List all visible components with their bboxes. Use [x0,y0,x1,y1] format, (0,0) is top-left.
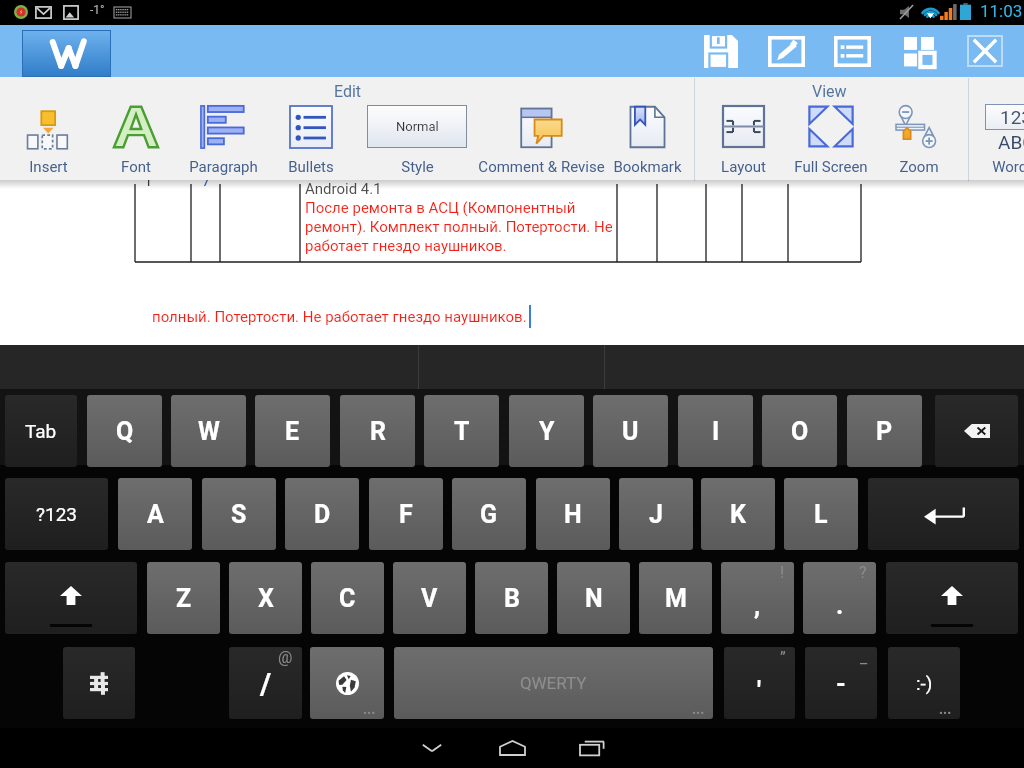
button[interactable]: L [784,478,858,550]
button[interactable]: G [452,478,526,550]
button[interactable]: Z [147,562,220,634]
staticText: ? [859,563,867,582]
button[interactable]: - [805,647,877,719]
button[interactable]: Outline [829,25,875,77]
button[interactable]: shift [886,562,1018,634]
staticText: 11:03 [980,1,1023,21]
button[interactable]: settings [63,647,135,719]
staticText: E [285,417,300,446]
staticText: - [836,669,846,698]
button[interactable]: F [369,478,443,550]
button[interactable]: Close [962,25,1008,77]
staticText: QWERTY [520,673,587,693]
staticText: Q [116,417,134,446]
staticText: C [339,584,356,613]
staticText: I [712,417,720,446]
button[interactable]: / [229,647,302,719]
button[interactable]: I [678,395,753,467]
staticText: . [836,591,844,620]
staticText: G [480,500,498,529]
staticText: Word C [992,158,1024,176]
button[interactable]: Bookmark [567,77,727,180]
staticText: ! [780,563,785,582]
button[interactable]: Normal [337,77,497,180]
button[interactable]: W [171,395,246,467]
button[interactable]: O [762,395,837,467]
button[interactable]: Y [509,395,584,467]
button[interactable]: Tab [5,395,77,467]
button[interactable]: V [393,562,466,634]
button[interactable]: . [803,562,876,634]
staticText: U [622,417,639,446]
button[interactable]: QWERTY [394,647,713,719]
button[interactable]: Insert [0,77,128,180]
staticText: R [370,417,386,446]
button[interactable]: U [593,395,668,467]
button[interactable]: T [424,395,499,467]
staticText: V [421,584,438,613]
staticText: Tab [25,420,57,442]
button[interactable]: X [229,562,302,634]
staticText: Font [121,158,151,176]
button[interactable]: Zoom [839,77,999,180]
staticText: ABC [998,131,1024,149]
staticText: полный. Потертости. Не работает гнездо н… [152,308,527,326]
button[interactable]: J [619,478,693,550]
staticText: A [147,500,164,529]
button[interactable]: A [118,478,192,550]
button[interactable]: Home [480,728,544,768]
staticText: Android 4.1 [305,180,382,198]
button[interactable]: Paragraph [143,77,303,180]
button[interactable]: Hide keyboard [400,728,464,768]
staticText: 123 [1000,106,1024,128]
button[interactable]: B [475,562,548,634]
button[interactable]: Save [698,25,744,77]
button[interactable]: shift [5,562,137,634]
staticText: Z [176,584,192,613]
staticText: M [665,584,687,613]
button[interactable]: R [340,395,415,467]
button[interactable]: enter [868,478,1019,550]
button[interactable]: E [255,395,330,467]
button[interactable]: H [536,478,610,550]
button[interactable]: Recents [560,728,624,768]
button[interactable]: App menu [22,30,111,77]
staticText: Comment & Revise [478,158,605,176]
staticText: Edit [334,82,362,101]
button[interactable]: N [557,562,630,634]
button[interactable]: Full Screen [751,77,911,180]
button[interactable]: Font [56,77,216,180]
button[interactable]: M [639,562,712,634]
staticText: ... [692,701,705,717]
staticText: D [314,500,331,529]
button[interactable]: Layout [663,77,823,180]
button[interactable]: Apps [896,25,942,77]
button[interactable]: ?123 [5,478,108,550]
staticText: O [791,417,809,446]
staticText: Layout [721,158,766,176]
staticText: Style [401,158,434,176]
button[interactable]: globe [310,647,384,719]
button[interactable]: Q [87,395,162,467]
staticText: N [585,584,603,613]
button[interactable]: S [202,478,276,550]
staticText: / [260,666,272,701]
button[interactable]: Bullets [231,77,391,180]
button[interactable]: Comment & Revise [461,77,621,180]
button[interactable]: D [285,478,359,550]
button[interactable]: :-) [888,647,960,719]
staticText: Normal [396,119,439,134]
button[interactable]: Edit [763,25,809,77]
button[interactable]: K [701,478,775,550]
button[interactable]: P [847,395,922,467]
button[interactable]: ' [724,647,795,719]
staticText: ... [939,701,952,717]
staticText: Y [539,417,555,446]
staticText: T [454,417,470,446]
button[interactable]: 123 [936,77,1024,180]
staticText: K [730,500,746,529]
button[interactable]: backspace [935,395,1018,467]
staticText: После ремонта в АСЦ (Компонентный ремонт… [305,199,613,255]
button[interactable]: C [311,562,384,634]
button[interactable]: , [721,562,794,634]
